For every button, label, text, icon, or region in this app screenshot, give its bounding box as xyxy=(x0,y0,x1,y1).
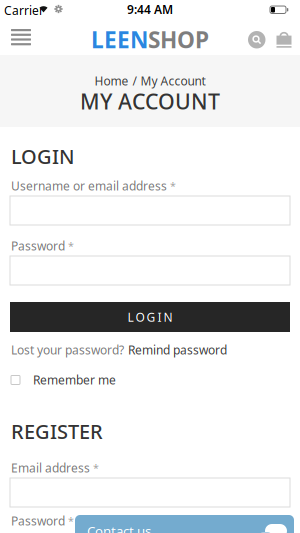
staticText: LEEN xyxy=(91,24,148,55)
staticText: Password xyxy=(11,238,65,254)
button[interactable]: Text field xyxy=(10,196,290,225)
staticText: * xyxy=(68,514,74,528)
button[interactable]: Remember me xyxy=(11,372,116,388)
staticText: MY ACCOUNT xyxy=(80,87,220,115)
staticText: * xyxy=(93,461,99,475)
button[interactable]: LEENSHOP home xyxy=(91,24,209,55)
staticText: Password xyxy=(11,513,65,529)
staticText: Carrier xyxy=(4,2,44,18)
button[interactable]: Home xyxy=(94,73,128,89)
staticText: / xyxy=(132,73,136,89)
button[interactable]: Log in xyxy=(10,302,290,332)
staticText: Lost your password? xyxy=(11,342,124,358)
staticText: * xyxy=(68,239,74,253)
button[interactable]: Search xyxy=(245,28,268,51)
staticText: Home xyxy=(94,73,128,89)
staticText: SHOP xyxy=(148,24,209,55)
button[interactable]: Text field xyxy=(10,256,290,285)
button[interactable]: Menu xyxy=(7,23,35,51)
staticText: Remember me xyxy=(33,372,116,388)
staticText: Remind password xyxy=(128,342,227,358)
button[interactable]: Text field xyxy=(10,478,290,507)
staticText: LOGIN xyxy=(11,143,75,170)
staticText: My Account xyxy=(140,73,205,89)
staticText: REGISTER xyxy=(11,418,103,445)
button[interactable]: Remind password xyxy=(128,342,227,358)
button[interactable]: Contact us xyxy=(75,515,294,533)
staticText: Email address xyxy=(11,460,90,476)
staticText: 9:44 AM xyxy=(127,1,173,17)
staticText: * xyxy=(170,179,176,193)
button[interactable]: Cart xyxy=(273,27,295,51)
staticText: L O G I N xyxy=(127,309,172,325)
staticText: Contact us xyxy=(87,522,151,533)
staticText: Username or email address xyxy=(11,178,167,194)
